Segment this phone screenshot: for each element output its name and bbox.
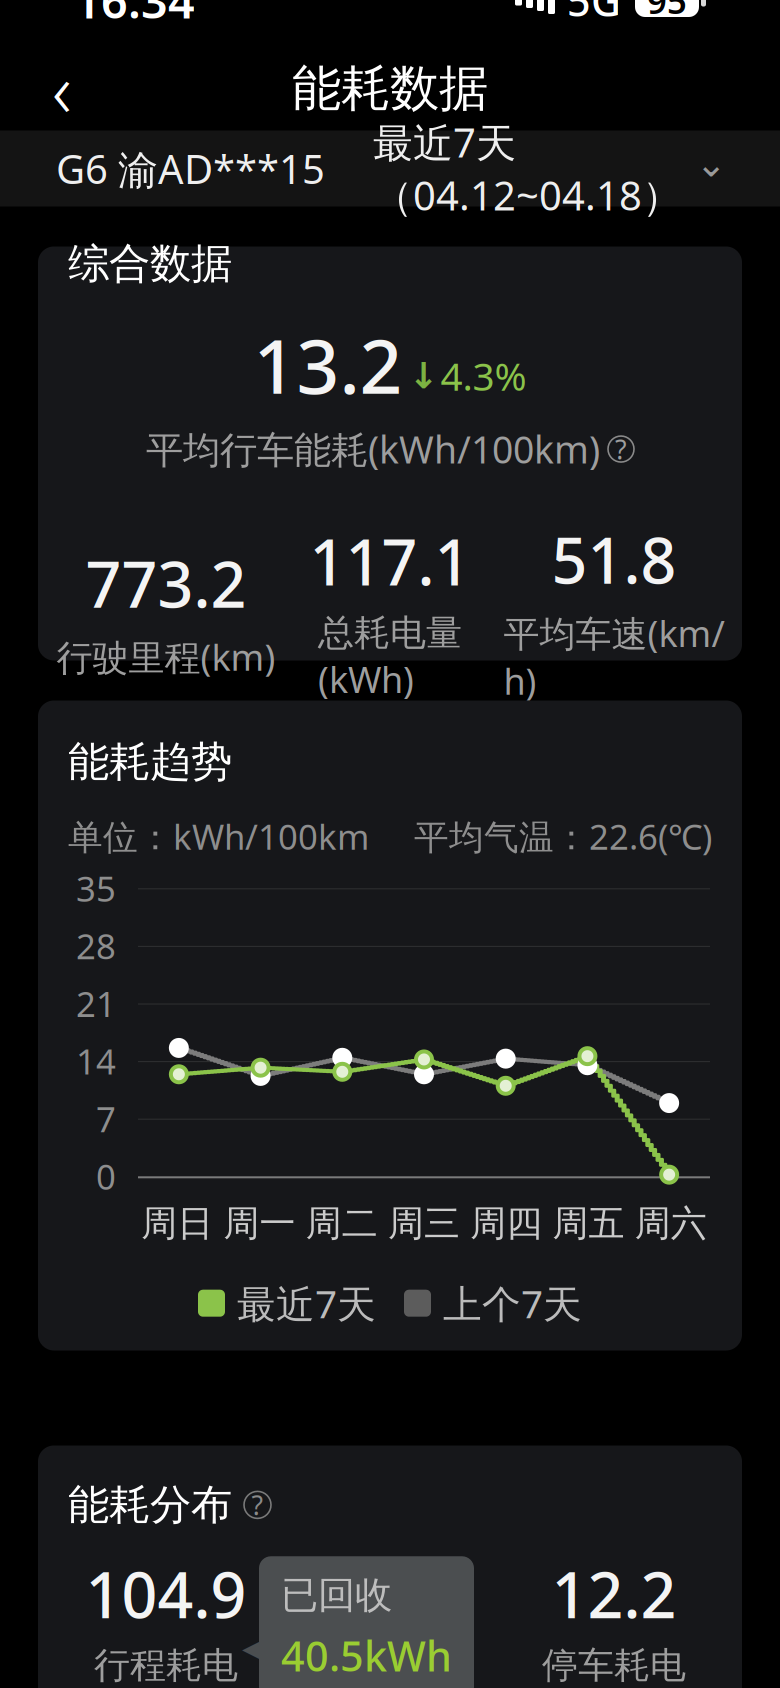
staticText: 平均行车能耗(kWh/100km)	[146, 424, 600, 474]
staticText: 13.2	[253, 315, 402, 414]
staticText: 周二	[306, 1201, 378, 1245]
staticText: 周日	[141, 1201, 213, 1245]
staticText: 平均气温：22.6(℃)	[414, 813, 712, 859]
staticText: 95	[647, 0, 687, 23]
staticText: 16:34	[74, 0, 195, 31]
staticText: 117.1	[309, 520, 470, 603]
staticText: ?	[251, 1487, 263, 1523]
staticText: 总耗电量(kWh)	[318, 611, 462, 703]
staticText: 能耗分布	[68, 1479, 232, 1530]
staticText: 周五	[553, 1201, 625, 1245]
staticText: 单位：kWh/100km	[68, 813, 369, 859]
staticText: 4.3%	[440, 350, 526, 401]
staticText: 最近7天（04.12~04.18）	[373, 115, 682, 222]
staticText: 综合数据	[68, 238, 232, 289]
staticText: 已回收	[281, 1572, 392, 1618]
staticText: 35	[76, 865, 116, 911]
staticText: 40.5kWh	[281, 1628, 452, 1683]
staticText: 行驶里程(km)	[56, 633, 275, 681]
staticText: 5G	[567, 0, 621, 28]
staticText: 21	[76, 980, 116, 1026]
staticText: ◀	[242, 1629, 267, 1666]
staticText: 行程耗电(kWh)	[94, 1643, 238, 1688]
staticText: 14	[76, 1038, 116, 1084]
staticText: 上个7天	[443, 1277, 582, 1329]
staticText: ?	[615, 431, 627, 467]
staticText: 周三	[388, 1201, 460, 1245]
staticText: 773.2	[85, 542, 246, 625]
staticText: ‹	[52, 39, 72, 138]
staticText: 停车耗电(kWh)	[542, 1643, 686, 1688]
button[interactable]: G6 渝AD***15	[56, 130, 325, 207]
staticText: 周四	[470, 1201, 542, 1245]
button[interactable]: 最近7天（04.12~04.18）	[373, 103, 724, 234]
staticText: ↓	[408, 355, 438, 396]
staticText: G6 渝AD***15	[56, 142, 325, 195]
button[interactable]: 能耗分布说明	[244, 1491, 271, 1518]
button[interactable]: 返回	[26, 52, 98, 124]
staticText: 0	[96, 1153, 116, 1199]
staticText: 能耗趋势	[68, 736, 232, 787]
staticText: 平均车速(km/h)	[503, 609, 724, 705]
staticText: 周一	[223, 1201, 295, 1245]
staticText: 最近7天	[237, 1277, 376, 1329]
staticText: 能耗数据	[292, 58, 488, 119]
staticText: 28	[76, 923, 116, 969]
staticText: ⌄	[695, 142, 726, 185]
staticText: 7	[96, 1096, 116, 1142]
staticText: 104.9	[85, 1552, 246, 1635]
button[interactable]: 平均行车能耗说明	[608, 436, 634, 462]
staticText: 51.8	[551, 518, 676, 601]
staticText: 12.2	[551, 1552, 676, 1635]
staticText: 周六	[635, 1201, 707, 1245]
